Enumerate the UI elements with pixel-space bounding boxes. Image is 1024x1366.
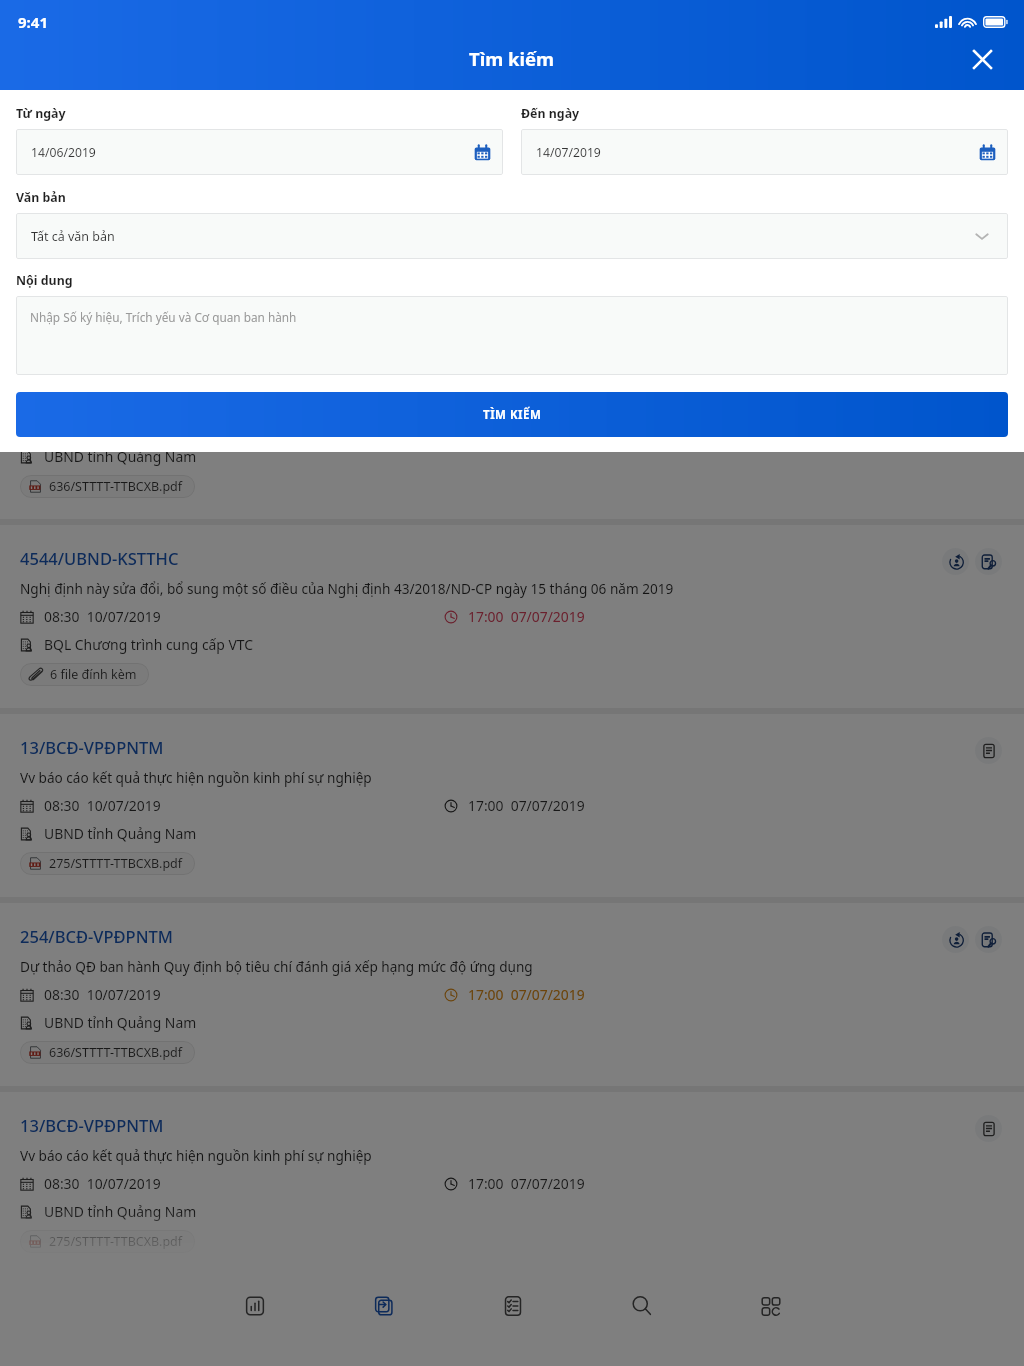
staticText: 08:30 10/07/2019 xyxy=(44,1174,161,1193)
other: Pick date xyxy=(979,144,996,161)
staticText: 254/BCĐ-VPĐPNTM xyxy=(20,925,173,947)
staticText: 275/STTTT-TTBCXB.pdf xyxy=(49,1233,183,1250)
button[interactable]: TÌM KIẾM xyxy=(16,392,1008,437)
button[interactable]: Tasks xyxy=(448,1276,577,1336)
button[interactable]: Statistics xyxy=(190,1276,319,1336)
staticText: 6 file đính kèm xyxy=(50,666,137,683)
button[interactable]: 636/STTTT-TTBCXB.pdf xyxy=(20,1041,195,1064)
staticText: 4544/UBND-KSTTHC xyxy=(20,547,179,569)
staticText: 13/BCĐ-VPĐPNTM xyxy=(20,1114,164,1136)
button[interactable]: 275/STTTT-TTBCXB.pdf xyxy=(20,1230,195,1253)
button[interactable]: Search xyxy=(577,1276,706,1336)
staticText: 14/07/2019 xyxy=(536,144,601,161)
button[interactable]: Close xyxy=(962,39,1002,79)
button[interactable]: More xyxy=(706,1276,835,1336)
staticText: Từ ngày xyxy=(16,105,66,122)
staticText: Đến ngày xyxy=(521,105,580,122)
staticText: Văn bản xyxy=(16,189,66,206)
button[interactable]: Documents xyxy=(319,1276,448,1336)
staticText: 08:30 10/07/2019 xyxy=(44,607,161,626)
staticText: UBND tỉnh Quảng Nam xyxy=(44,824,197,843)
staticText: UBND tỉnh Quảng Nam xyxy=(44,1202,197,1221)
staticText: UBND tỉnh Quảng Nam xyxy=(44,447,197,466)
staticText: 17:00 07/07/2019 xyxy=(468,1174,585,1193)
staticText: 14/06/2019 xyxy=(31,144,96,161)
staticText: TÌM KIẾM xyxy=(483,407,542,423)
button[interactable]: 6 file đính kèm xyxy=(20,663,149,686)
button[interactable]: Recall document xyxy=(942,548,969,575)
button[interactable]: Tất cả văn bản xyxy=(16,213,1008,259)
staticText: UBND tỉnh Quảng Nam xyxy=(44,1013,197,1032)
button[interactable]: Recall document xyxy=(942,926,969,953)
button[interactable]: 275/STTTT-TTBCXB.pdf xyxy=(20,852,195,875)
button[interactable]: Nhập Số ký hiệu, Trích yếu và Cơ quan ba… xyxy=(16,296,1008,375)
staticText: 636/STTTT-TTBCXB.pdf xyxy=(49,1044,183,1061)
staticText: Nghị định này sửa đổi, bổ sung một số đi… xyxy=(20,579,1008,598)
staticText: BQL Chương trình cung cấp VTC xyxy=(44,635,254,654)
staticText: Nội dung xyxy=(16,272,73,289)
staticText: 17:00 07/07/2019 xyxy=(468,796,585,815)
staticText: Nhập Số ký hiệu, Trích yếu và Cơ quan ba… xyxy=(30,309,297,325)
staticText: 275/STTTT-TTBCXB.pdf xyxy=(49,855,183,872)
button[interactable]: Document details xyxy=(975,548,1002,575)
other: Pick date xyxy=(474,144,491,161)
staticText: Tất cả văn bản xyxy=(31,228,115,245)
staticText: 13/BCĐ-VPĐPNTM xyxy=(20,736,164,758)
staticText: 08:30 10/07/2019 xyxy=(44,985,161,1004)
staticText: Dự thảo QĐ ban hành Quy định bộ tiêu chí… xyxy=(20,957,1008,976)
button[interactable]: 14/06/2019 xyxy=(16,129,503,175)
staticText: 636/STTTT-TTBCXB.pdf xyxy=(49,478,183,495)
button[interactable]: Document details xyxy=(975,926,1002,953)
staticText: Vv báo cáo kết quả thực hiện nguồn kinh … xyxy=(20,1146,1008,1165)
staticText: Tìm kiếm xyxy=(469,46,555,71)
staticText: 9:41 xyxy=(18,12,48,32)
staticText: 17:00 07/07/2019 xyxy=(468,985,585,1004)
button[interactable]: Document details xyxy=(975,737,1002,764)
staticText: 08:30 10/07/2019 xyxy=(44,796,161,815)
button[interactable]: 636/STTTT-TTBCXB.pdf xyxy=(20,475,195,498)
button[interactable]: Document details xyxy=(975,1115,1002,1142)
button[interactable]: 14/07/2019 xyxy=(521,129,1008,175)
staticText: 17:00 07/07/2019 xyxy=(468,607,585,626)
staticText: Vv báo cáo kết quả thực hiện nguồn kinh … xyxy=(20,768,1008,787)
